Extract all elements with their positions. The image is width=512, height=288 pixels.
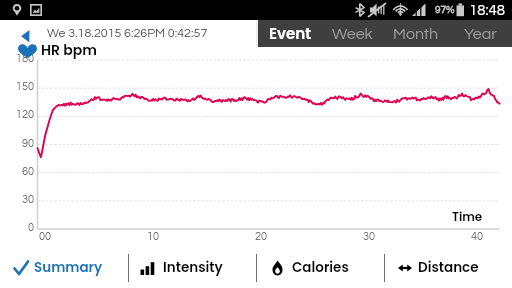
staticText: 60 [0, 166, 34, 177]
staticText: HR bpm [41, 40, 97, 60]
button[interactable]: Back [16, 26, 36, 46]
staticText: Calories [292, 258, 349, 277]
staticText: We 3.18.2015 6:26PM 0:42:57 [47, 27, 208, 40]
staticText: 30 [0, 194, 34, 205]
button[interactable]: Event [258, 20, 321, 47]
staticText: 0 [0, 222, 34, 233]
staticText: Month [393, 26, 439, 42]
staticText: Summary [34, 258, 103, 277]
staticText: Year [464, 26, 497, 42]
staticText: Distance [418, 258, 479, 277]
staticText: 30 [355, 231, 383, 242]
staticText: 00 [31, 231, 59, 242]
staticText: 10 [139, 231, 167, 242]
staticText: 40 [463, 231, 491, 242]
staticText: 120 [0, 109, 34, 120]
staticText: 20 [247, 231, 275, 242]
button[interactable]: Year [448, 20, 512, 47]
staticText: 180 [0, 53, 34, 64]
button[interactable]: Distance [385, 247, 512, 288]
staticText: 18:48 [469, 3, 506, 18]
staticText: Time [452, 208, 483, 225]
button[interactable]: Month [384, 20, 448, 47]
button[interactable]: Summary [0, 247, 128, 288]
staticText: Event [269, 23, 311, 44]
button[interactable]: Intensity [129, 247, 256, 288]
button[interactable]: Calories [257, 247, 384, 288]
staticText: 90 [0, 138, 34, 149]
button[interactable]: Week [321, 20, 384, 47]
staticText: Intensity [163, 258, 223, 277]
staticText: 150 [0, 81, 34, 92]
staticText: Week [332, 26, 373, 42]
staticText: 97% [435, 5, 455, 15]
